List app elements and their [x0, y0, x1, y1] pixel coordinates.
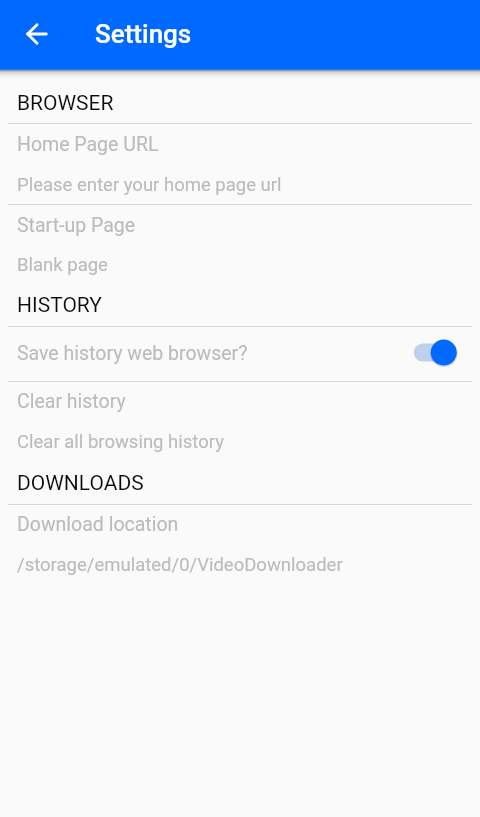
button[interactable]: Clear history: [0, 382, 480, 462]
staticText: Clear all browsing history: [17, 431, 224, 453]
button[interactable]: Start-up Page: [0, 205, 480, 285]
staticText: Start-up Page: [17, 214, 136, 237]
staticText: Save history web browser?: [17, 342, 248, 365]
staticText: HISTORY: [17, 293, 102, 318]
button[interactable]: Home Page URL: [0, 124, 480, 204]
staticText: BROWSER: [17, 91, 114, 116]
staticText: Settings: [95, 19, 192, 49]
staticText: Home Page URL: [17, 133, 159, 156]
staticText: Download location: [17, 513, 179, 536]
staticText: Clear history: [17, 390, 126, 413]
button[interactable]: Save history web browser?: [0, 327, 480, 381]
staticText: Blank page: [17, 254, 108, 276]
staticText: DOWNLOADS: [17, 471, 144, 496]
button[interactable]: Back: [13, 10, 61, 58]
staticText: /storage/emulated/0/VideoDownloader: [17, 554, 343, 576]
other: Save history toggle: [405, 332, 465, 372]
staticText: Please enter your home page url: [17, 174, 282, 196]
button[interactable]: Download location: [0, 505, 480, 585]
